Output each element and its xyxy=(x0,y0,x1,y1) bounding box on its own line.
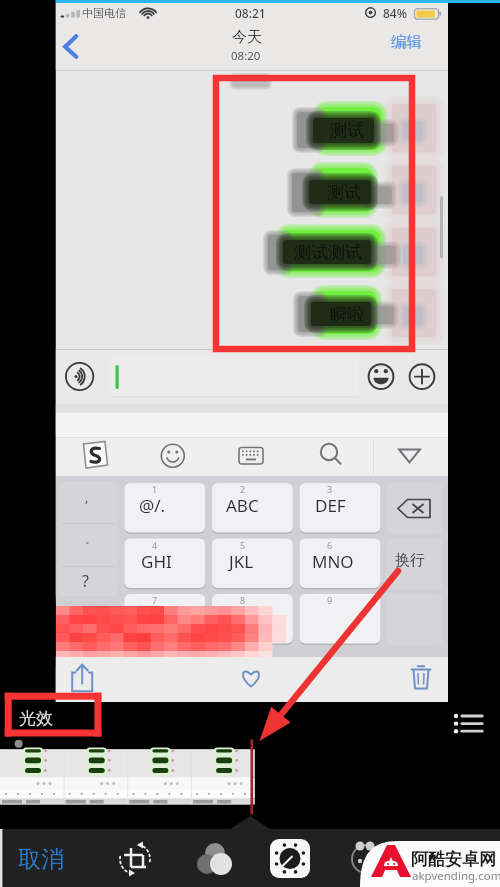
staticText: DEF xyxy=(315,494,346,517)
staticText: 中国电信 xyxy=(82,6,126,20)
staticText: 4 xyxy=(152,539,158,551)
staticText: 08:21 xyxy=(235,5,266,21)
staticText: , xyxy=(85,489,89,505)
button[interactable] xyxy=(386,26,444,62)
staticText: 取消 xyxy=(18,845,64,874)
button[interactable]: Light effects xyxy=(240,828,316,887)
button[interactable] xyxy=(0,828,88,887)
staticText: GHI xyxy=(141,550,172,573)
staticText: 光效 xyxy=(19,708,53,729)
staticText: 换行 xyxy=(395,551,425,570)
staticText: 8 xyxy=(240,594,246,606)
staticText: @/. xyxy=(139,494,166,517)
staticText: akpvending.com xyxy=(412,868,500,884)
staticText: 84% xyxy=(383,5,407,21)
staticText: ABC xyxy=(226,494,259,517)
button[interactable]: Crop and rotate xyxy=(88,828,164,887)
staticText: 5 xyxy=(240,539,246,551)
button[interactable]: List view xyxy=(448,706,494,746)
staticText: ? xyxy=(82,570,89,592)
staticText: 编辑 xyxy=(391,32,422,52)
staticText: MNO xyxy=(312,550,354,573)
button[interactable]: 取消 xyxy=(10,840,72,878)
staticText: 瞬啦 xyxy=(330,304,364,325)
button[interactable]: Delete xyxy=(398,658,444,702)
staticText: 08:20 xyxy=(231,48,261,64)
staticText: 测试测试 xyxy=(294,242,362,263)
staticText: 9 xyxy=(327,594,333,606)
staticText: 1 xyxy=(152,483,158,495)
staticText: 6 xyxy=(327,539,333,551)
staticText: 。 xyxy=(85,533,95,546)
staticText: 7 xyxy=(152,594,158,606)
button[interactable]: Filters xyxy=(164,828,240,887)
button[interactable]: Favourite xyxy=(228,658,274,702)
staticText: 3 xyxy=(327,483,333,495)
staticText: 阿酷安卓网 xyxy=(411,849,496,870)
button[interactable]: Share xyxy=(60,658,106,702)
staticText: 测试 xyxy=(327,182,361,203)
staticText: 2 xyxy=(240,483,246,495)
button[interactable]: Back xyxy=(58,22,98,66)
button[interactable]: Adjust xyxy=(316,828,392,887)
staticText: 今天 xyxy=(232,28,262,47)
staticText: JKL xyxy=(229,550,254,573)
staticText: 测试 xyxy=(330,120,364,141)
